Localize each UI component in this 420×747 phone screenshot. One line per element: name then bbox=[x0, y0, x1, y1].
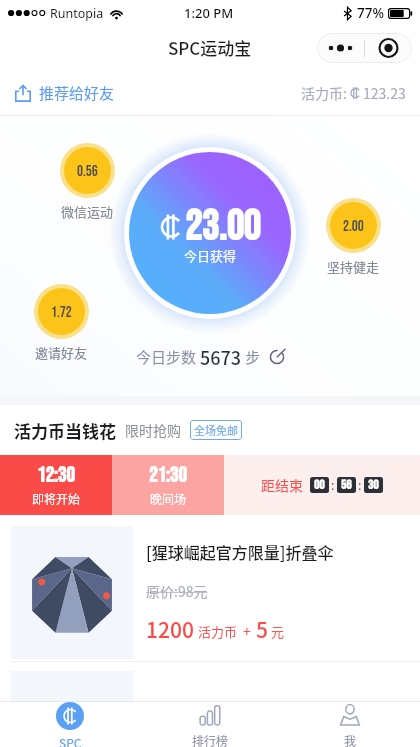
staticText: 晚间场 bbox=[150, 490, 187, 507]
staticText: 推荐给好友 bbox=[39, 82, 115, 104]
button[interactable]: 0.56 bbox=[60, 143, 115, 198]
staticText: 活力币: bbox=[301, 83, 351, 103]
staticText: 步 bbox=[242, 346, 261, 368]
staticText: 21:30 bbox=[149, 463, 187, 488]
staticText: Runtopia bbox=[50, 5, 104, 22]
button[interactable]: [猩球崛起官方限量]折叠伞 bbox=[0, 515, 420, 661]
button[interactable]: More options bbox=[317, 33, 412, 63]
staticText: 1:20 PM bbox=[184, 4, 234, 22]
staticText: 56 bbox=[341, 477, 352, 493]
staticText: 原价:98元 bbox=[146, 581, 208, 601]
staticText: [猩球崛起官方限量]折叠伞 bbox=[146, 540, 334, 563]
button[interactable]: 我 bbox=[280, 702, 420, 747]
staticText: SPC bbox=[59, 734, 82, 747]
staticText: 23.00 bbox=[185, 202, 261, 252]
staticText: : bbox=[358, 476, 362, 494]
staticText: 1.72 bbox=[51, 303, 72, 321]
staticText: 坚持健走 bbox=[327, 257, 380, 276]
staticText: 1200 bbox=[146, 614, 194, 644]
staticText: 全场免邮 bbox=[194, 422, 238, 438]
staticText: 00 bbox=[314, 477, 325, 493]
staticText: 2.00 bbox=[343, 217, 364, 235]
staticText: 活力币 bbox=[198, 622, 238, 641]
staticText: 今日获得 bbox=[184, 246, 237, 265]
staticText: + bbox=[243, 621, 251, 641]
staticText: SPC运动宝 bbox=[168, 35, 252, 60]
button[interactable]: 2.00 bbox=[326, 198, 381, 253]
staticText: 排行榜 bbox=[192, 732, 229, 747]
button[interactable]: 今日步数 bbox=[132, 340, 289, 374]
staticText: 0.56 bbox=[77, 162, 98, 180]
staticText: 77% bbox=[357, 4, 384, 22]
button[interactable]: 1.72 bbox=[34, 284, 89, 339]
button[interactable]: 推荐给好友 bbox=[14, 78, 115, 108]
staticText: 我 bbox=[344, 732, 357, 747]
button[interactable]: 排行榜 bbox=[140, 702, 280, 747]
staticText: 12:30 bbox=[37, 463, 75, 488]
staticText: 距结束 bbox=[261, 475, 303, 495]
button[interactable]: 12:30 bbox=[0, 455, 112, 515]
staticText: 活力币当钱花 bbox=[14, 418, 116, 443]
staticText: 30 bbox=[368, 477, 379, 493]
staticText: 今日步数 bbox=[136, 346, 200, 368]
staticText: : bbox=[331, 476, 335, 494]
staticText: 123.23 bbox=[363, 83, 406, 103]
staticText: 5673 bbox=[200, 344, 242, 370]
staticText: 微信运动 bbox=[61, 202, 114, 221]
button[interactable]: SPC bbox=[0, 702, 140, 747]
staticText: 5 bbox=[256, 614, 268, 644]
staticText: 限时抢购 bbox=[125, 420, 181, 440]
staticText: 邀请好友 bbox=[35, 343, 88, 362]
staticText: 元 bbox=[271, 622, 285, 641]
button[interactable]: 21:30 bbox=[112, 455, 224, 515]
staticText: 即将开始 bbox=[32, 490, 81, 507]
